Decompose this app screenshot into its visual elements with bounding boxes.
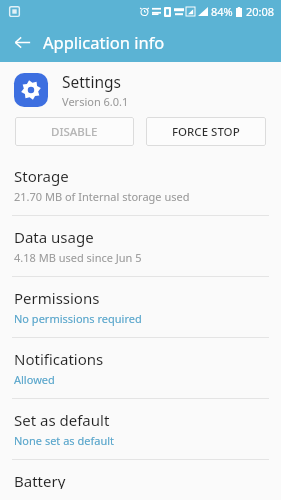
staticText: 20:08: [246, 4, 275, 19]
button[interactable]: Permissions: [0, 277, 281, 337]
staticText: 84%: [211, 4, 233, 19]
staticText: No permissions required: [14, 311, 142, 326]
button[interactable]: DISABLE: [15, 117, 134, 146]
staticText: DISABLE: [51, 124, 98, 140]
staticText: Settings: [62, 71, 121, 92]
staticText: Notifications: [14, 349, 104, 369]
button[interactable]: Storage: [0, 155, 281, 215]
button[interactable]: Set as default: [0, 399, 281, 459]
button[interactable]: Data usage: [0, 216, 281, 276]
staticText: Allowed: [14, 372, 55, 387]
staticText: Version 6.0.1: [62, 94, 129, 109]
staticText: FORCE STOP: [172, 124, 240, 140]
button[interactable]: FORCE STOP: [146, 117, 266, 146]
staticText: Battery: [14, 471, 66, 489]
staticText: 4.18 MB used since Jun 5: [14, 250, 142, 265]
staticText: Permissions: [14, 288, 100, 308]
staticText: 21.70 MB of Internal storage used: [14, 189, 190, 204]
button[interactable]: Notifications: [0, 338, 281, 398]
staticText: None set as default: [14, 433, 115, 448]
button[interactable]: Battery: [0, 460, 281, 500]
button[interactable]: Back: [6, 26, 38, 58]
staticText: Storage: [14, 166, 69, 186]
staticText: Application info: [43, 31, 165, 53]
staticText: Set as default: [14, 410, 110, 430]
staticText: Data usage: [14, 227, 94, 247]
